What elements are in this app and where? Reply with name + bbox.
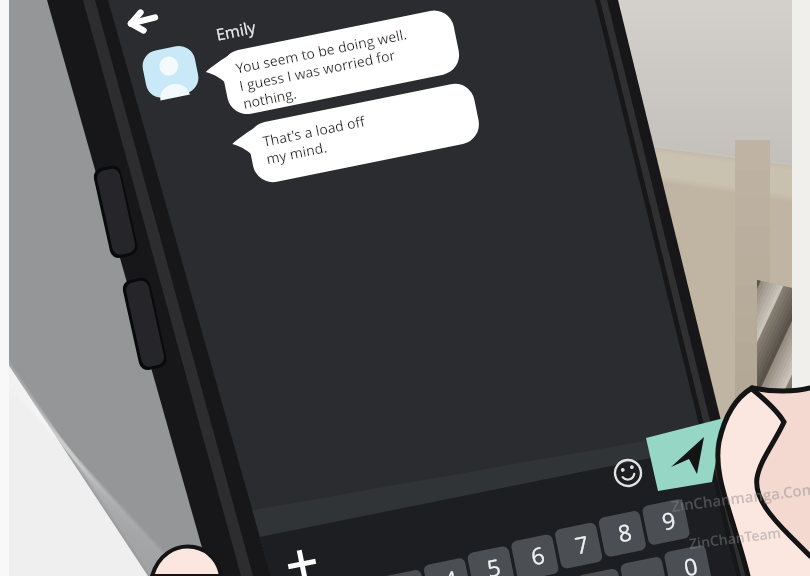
staticText: 0: [681, 549, 701, 576]
staticText: 7: [572, 527, 592, 560]
staticText: 8: [615, 515, 635, 548]
staticText: That's a load off my mind.: [261, 111, 370, 168]
button[interactable]: 8: [615, 515, 635, 548]
staticText: ZinChanmanga.Com: [670, 478, 810, 516]
button[interactable]: 7: [572, 527, 592, 560]
button[interactable]: 9: [659, 503, 679, 536]
staticText: 4: [441, 562, 461, 576]
staticText: ZinChanTeam: [688, 523, 783, 553]
button[interactable]: Emily: [214, 16, 258, 45]
staticText: 6: [528, 538, 548, 571]
button[interactable]: 4: [441, 562, 461, 576]
staticText: 5: [484, 550, 504, 576]
button[interactable]: 0: [681, 549, 701, 576]
staticText: Emily: [214, 16, 258, 45]
staticText: 9: [659, 503, 679, 536]
staticText: You seem to be doing well. I guess I was…: [234, 24, 416, 113]
button[interactable]: 6: [528, 538, 548, 571]
button[interactable]: 5: [484, 550, 504, 576]
